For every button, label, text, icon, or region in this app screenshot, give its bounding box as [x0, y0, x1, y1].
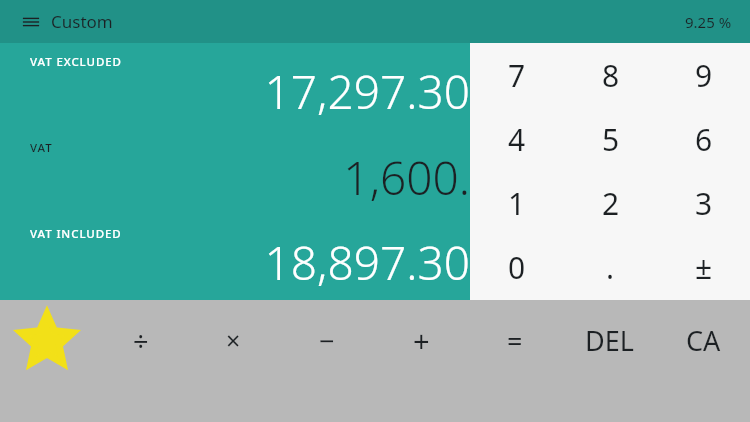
- button[interactable]: VAT INCLUDED: [0, 215, 470, 300]
- button[interactable]: ±: [657, 235, 750, 299]
- button[interactable]: 6: [657, 107, 750, 171]
- button[interactable]: 1: [470, 171, 564, 235]
- staticText: 1: [508, 183, 526, 224]
- staticText: 9: [695, 55, 713, 96]
- button[interactable]: 9.25 %: [679, 8, 738, 36]
- staticText: CA: [686, 322, 721, 359]
- button[interactable]: VAT EXCLUDED: [0, 43, 470, 129]
- other: Menu: [22, 13, 40, 31]
- button[interactable]: 4: [470, 107, 564, 171]
- staticText: ×: [226, 323, 241, 357]
- button[interactable]: Menu: [18, 6, 117, 37]
- staticText: =: [507, 322, 523, 359]
- button[interactable]: 2: [564, 171, 657, 235]
- button[interactable]: −: [280, 300, 374, 380]
- button[interactable]: Favourite: [0, 300, 94, 380]
- staticText: 6: [695, 119, 713, 160]
- staticText: 5: [602, 119, 620, 160]
- button[interactable]: 3: [657, 171, 750, 235]
- staticText: 17,297.30: [264, 60, 470, 123]
- staticText: DEL: [585, 322, 634, 359]
- staticText: 3: [695, 183, 713, 224]
- button[interactable]: ×: [187, 300, 280, 380]
- button[interactable]: 0: [470, 235, 564, 299]
- staticText: VAT: [30, 140, 53, 156]
- staticText: VAT EXCLUDED: [30, 54, 122, 70]
- staticText: 2: [602, 183, 620, 224]
- staticText: .: [606, 247, 615, 288]
- staticText: Custom: [51, 10, 113, 33]
- button[interactable]: 7: [470, 43, 564, 107]
- staticText: ±: [695, 247, 713, 288]
- staticText: ÷: [133, 322, 149, 359]
- button[interactable]: =: [468, 300, 562, 380]
- button[interactable]: VAT: [0, 129, 470, 215]
- button[interactable]: 8: [564, 43, 657, 107]
- staticText: 9.25 %: [685, 12, 732, 32]
- staticText: 4: [508, 119, 526, 160]
- button[interactable]: .: [564, 235, 657, 299]
- staticText: +: [413, 321, 430, 360]
- staticText: 8: [602, 55, 620, 96]
- button[interactable]: +: [374, 300, 468, 380]
- staticText: −: [319, 322, 335, 359]
- staticText: VAT INCLUDED: [30, 226, 122, 242]
- staticText: 7: [508, 55, 526, 96]
- staticText: 18,897.30: [264, 231, 470, 294]
- button[interactable]: 5: [564, 107, 657, 171]
- staticText: 1,600.: [343, 146, 470, 209]
- button[interactable]: 9: [657, 43, 750, 107]
- button[interactable]: CA: [656, 300, 750, 380]
- staticText: 0: [508, 247, 526, 288]
- button[interactable]: ÷: [94, 300, 187, 380]
- button[interactable]: DEL: [562, 300, 656, 380]
